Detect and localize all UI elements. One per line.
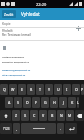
button[interactable]: B [48, 110, 56, 121]
staticText: ?123 [3, 127, 10, 131]
staticText: P [81, 87, 84, 92]
button[interactable]: , [13, 123, 20, 134]
button[interactable]: Z [12, 110, 20, 121]
button[interactable]: R [27, 84, 35, 95]
staticText: W [11, 87, 15, 92]
button[interactable]: Y [45, 84, 53, 95]
button[interactable]: H [50, 97, 58, 108]
staticText: 22:20 [36, 2, 47, 7]
button[interactable]: C [30, 110, 38, 121]
staticText: Re: Testovací email [2, 33, 31, 37]
staticText: B [51, 113, 54, 118]
staticText: Vyhledat [21, 11, 40, 17]
staticText: I [66, 87, 68, 92]
staticText: C [33, 113, 36, 118]
staticText: U [57, 87, 60, 92]
staticText: http://mobilenet.cz [2, 73, 26, 76]
staticText: M [68, 113, 72, 118]
button[interactable]: Backspace [75, 110, 84, 121]
staticText: Kopie [2, 22, 11, 26]
staticText: S [17, 100, 19, 105]
button[interactable]: P [81, 84, 84, 95]
button[interactable]: U [54, 84, 62, 95]
button[interactable] [0, 28, 84, 40]
staticText: T [39, 87, 41, 92]
button[interactable]: M [66, 110, 74, 121]
staticText: R [30, 87, 33, 92]
staticText: Y [48, 87, 51, 92]
button[interactable]: Zrušit [2, 10, 16, 18]
staticText: A [8, 100, 11, 105]
button[interactable]: Space [21, 123, 56, 134]
staticText: F [35, 100, 37, 105]
button[interactable]: Shift [0, 110, 11, 121]
button[interactable]: N [57, 110, 65, 121]
staticText: O [75, 87, 78, 92]
staticText: , [16, 126, 17, 131]
staticText: Z [15, 113, 18, 118]
staticText: X [24, 113, 27, 118]
button[interactable] [0, 20, 84, 27]
button[interactable]: . [57, 123, 64, 134]
button[interactable]: Enter [65, 123, 77, 134]
button[interactable]: Q [0, 84, 8, 95]
button[interactable]: D [23, 97, 31, 108]
button[interactable]: J [59, 97, 67, 108]
staticText: daiekorp@mobilenet.cz [2, 68, 31, 71]
staticText: K [71, 100, 74, 105]
button[interactable]: O [72, 84, 80, 95]
button[interactable]: T [36, 84, 44, 95]
button[interactable]: K [68, 97, 76, 108]
button[interactable]: A [5, 97, 13, 108]
button[interactable]: S [14, 97, 22, 108]
staticText: Vojtěch Daňhelský [2, 55, 25, 58]
staticText: Redaktor mobilenet.cz [2, 60, 29, 63]
staticText: V [42, 113, 45, 118]
button[interactable]: Vyhledat [21, 8, 40, 20]
staticText: Q [3, 87, 6, 92]
button[interactable]: V [39, 110, 47, 121]
staticText: D [26, 100, 29, 105]
staticText: Předmět [2, 29, 13, 32]
staticText: E [21, 87, 23, 92]
staticText: L [77, 100, 79, 105]
button[interactable]: Add recipient [75, 25, 82, 32]
staticText: . [60, 126, 61, 131]
button[interactable]: G [41, 97, 49, 108]
staticText: Zrušit [4, 12, 14, 17]
button[interactable]: I [63, 84, 71, 95]
button[interactable]: X [21, 110, 29, 121]
button[interactable]: E [18, 84, 26, 95]
button[interactable]: L [77, 97, 79, 108]
button[interactable]: W [9, 84, 17, 95]
staticText: G [44, 100, 47, 105]
staticText: J [63, 100, 64, 105]
button[interactable]: F [32, 97, 40, 108]
staticText: N [60, 113, 63, 118]
button[interactable]: ?123 [0, 123, 12, 134]
staticText: H [53, 100, 56, 105]
